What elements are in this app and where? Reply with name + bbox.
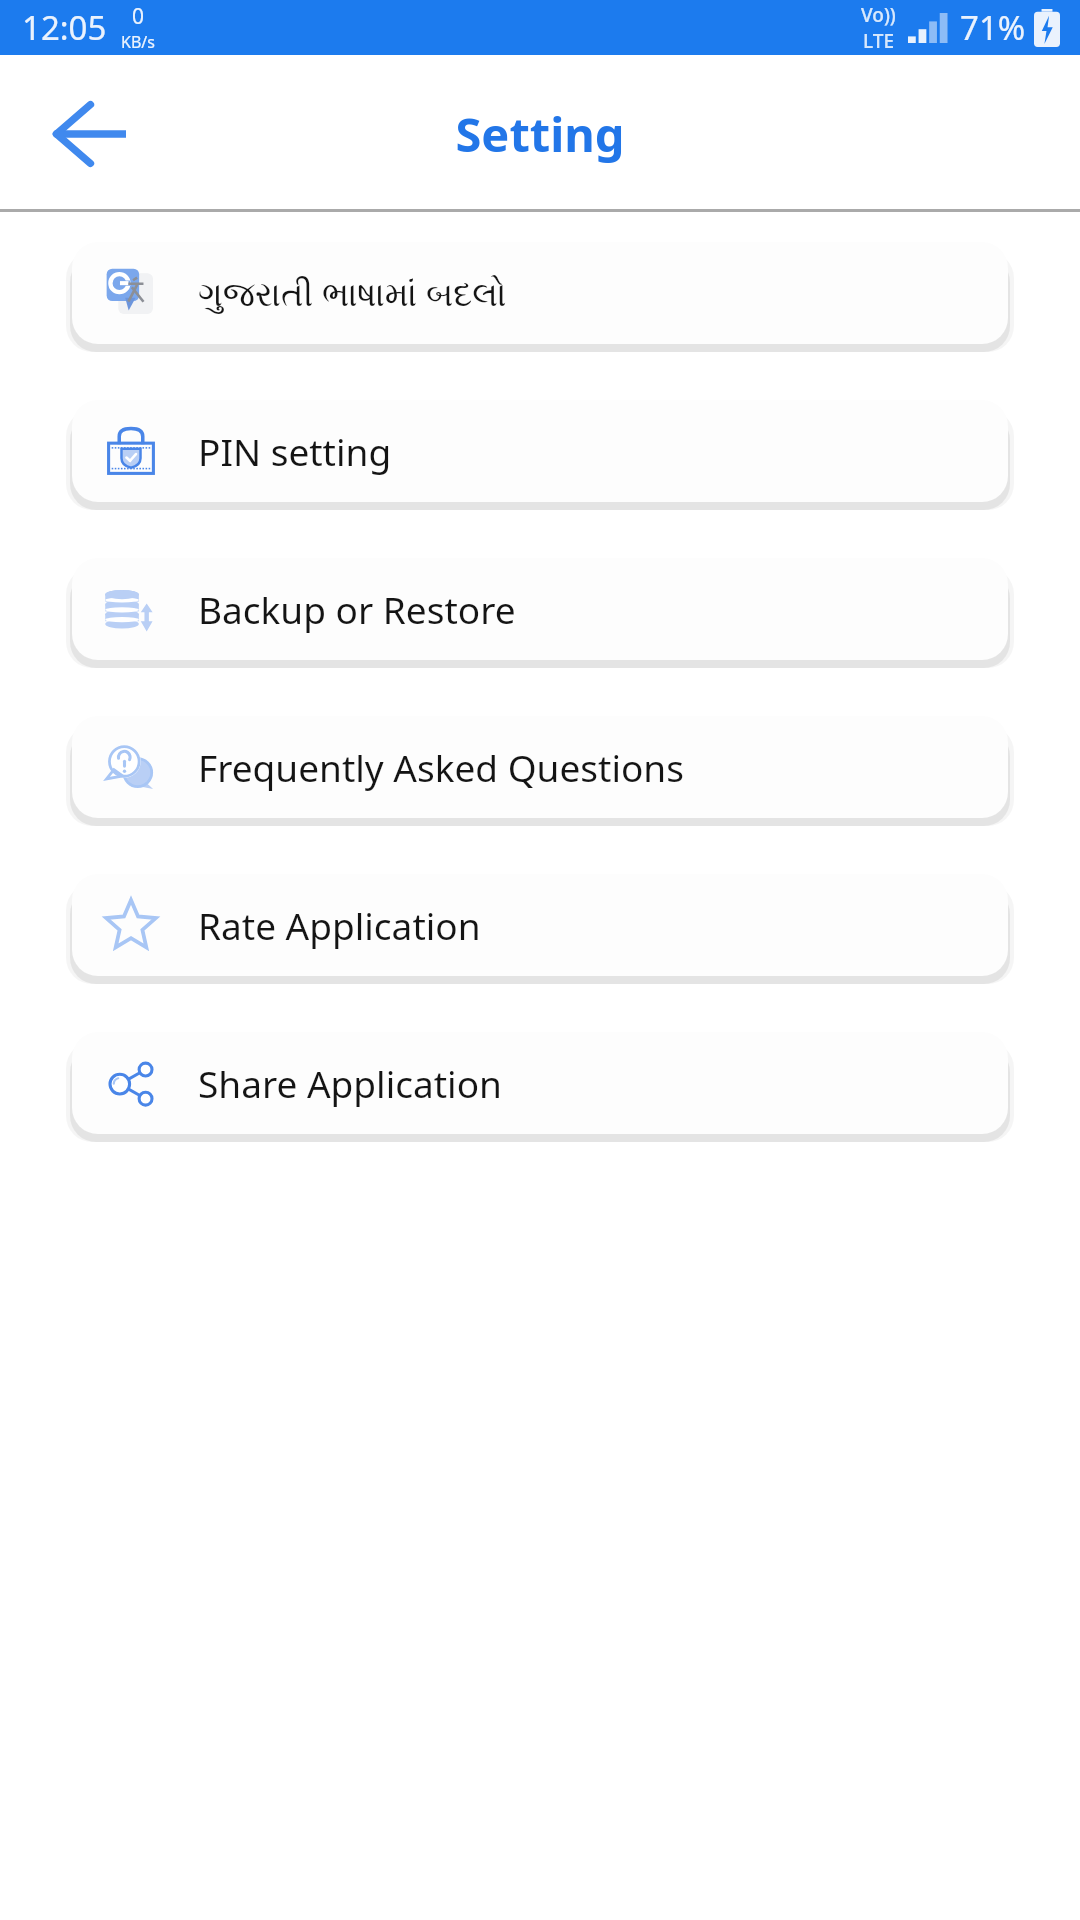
button[interactable]: Back <box>34 79 144 189</box>
staticText: ગુજરાતી ભાષામાં બદલો <box>198 270 507 316</box>
staticText: Vo)) <box>861 2 896 28</box>
staticText: 12:05 <box>22 5 107 50</box>
staticText: Rate Application <box>198 900 481 950</box>
staticText: Setting <box>455 102 625 166</box>
staticText: Share Application <box>198 1058 502 1108</box>
button[interactable]: PIN setting <box>72 400 1008 502</box>
staticText: 0 <box>132 2 145 31</box>
button[interactable]: Share Application <box>72 1032 1008 1134</box>
button[interactable]: Backup or Restore <box>72 558 1008 660</box>
button[interactable]: Rate Application <box>72 874 1008 976</box>
staticText: LTE <box>863 28 895 54</box>
staticText: KB/s <box>121 31 155 53</box>
button[interactable]: Frequently Asked Questions <box>72 716 1008 818</box>
staticText: Frequently Asked Questions <box>198 742 684 792</box>
staticText: 71% <box>960 5 1026 50</box>
staticText: PIN setting <box>198 426 392 476</box>
staticText: Backup or Restore <box>198 584 516 634</box>
button[interactable]: ગુજરાતી ભાષામાં બદલો <box>72 242 1008 344</box>
